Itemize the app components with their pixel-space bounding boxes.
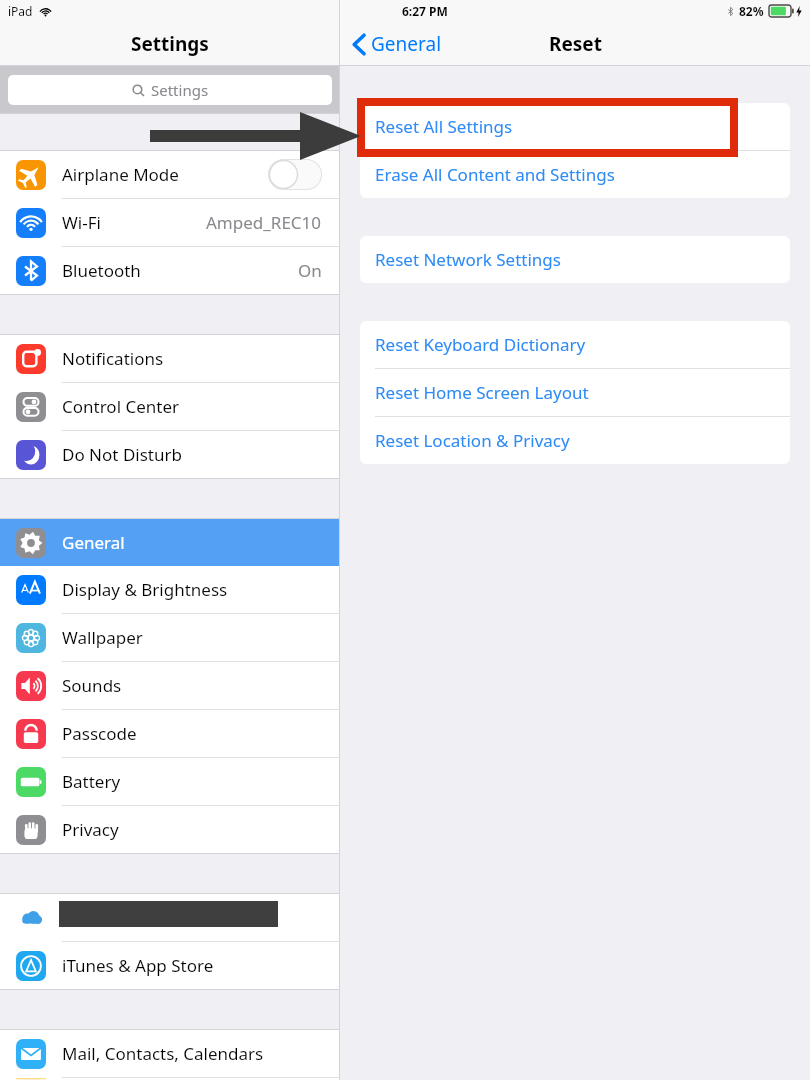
staticText: Amped_REC10 (206, 211, 322, 234)
staticText: iCloud (62, 899, 113, 922)
staticText: Bluetooth (62, 259, 141, 282)
staticText: Battery (62, 770, 121, 793)
staticText: Reset Location & Privacy (375, 429, 570, 452)
button[interactable]: General (0, 519, 340, 566)
button[interactable]: Notifications (0, 335, 340, 382)
staticText: Sounds (62, 674, 122, 697)
button[interactable]: iCloud (0, 894, 340, 941)
staticText: Wallpaper (62, 626, 143, 649)
staticText: Airplane Mode (62, 163, 179, 186)
staticText: Privacy (62, 818, 119, 841)
button[interactable]: Passcode (0, 710, 340, 757)
staticText: Mail, Contacts, Calendars (62, 1042, 264, 1065)
button[interactable]: Privacy (0, 806, 340, 853)
button[interactable]: Notes (0, 1078, 340, 1080)
button[interactable]: Display & Brightness (0, 566, 340, 613)
button[interactable]: Mail, Contacts, Calendars (0, 1030, 340, 1077)
staticText: Notifications (62, 347, 164, 370)
staticText: Control Center (62, 395, 180, 418)
staticText: Do Not Disturb (62, 443, 182, 466)
staticText: iPad (8, 3, 33, 19)
button[interactable]: iTunes & App Store (0, 942, 340, 989)
staticText: Reset All Settings (375, 115, 513, 138)
button[interactable]: Bluetooth (0, 247, 340, 294)
button[interactable]: Battery (0, 758, 340, 805)
staticText: Passcode (62, 722, 137, 745)
staticText: General (62, 531, 125, 554)
button[interactable]: Sounds (0, 662, 340, 709)
button[interactable]: Reset Keyboard Dictionary (360, 321, 790, 368)
staticText: Reset (549, 31, 602, 57)
button[interactable]: Control Center (0, 383, 340, 430)
button[interactable]: General (353, 31, 442, 57)
staticText: Settings (151, 80, 209, 100)
button[interactable]: Airplane Mode (0, 151, 340, 198)
button[interactable]: Wi-Fi (0, 199, 340, 246)
staticText: Reset Home Screen Layout (375, 381, 589, 404)
button[interactable]: Do Not Disturb (0, 431, 340, 478)
button[interactable]: Reset Home Screen Layout (360, 369, 790, 416)
button[interactable]: Reset Network Settings (360, 236, 790, 283)
button[interactable]: Settings (8, 75, 332, 105)
staticText: Display & Brightness (62, 578, 228, 601)
staticText: Wi-Fi (62, 211, 101, 234)
button[interactable]: Wallpaper (0, 614, 340, 661)
button[interactable]: Reset Location & Privacy (360, 417, 790, 464)
button[interactable]: Erase All Content and Settings (360, 151, 790, 198)
staticText: On (298, 259, 322, 282)
staticText: 82% (739, 3, 764, 19)
staticText: Settings (131, 31, 209, 57)
staticText: Erase All Content and Settings (375, 163, 615, 186)
staticText: Reset Network Settings (375, 248, 561, 271)
staticText: 6:27 PM (402, 3, 448, 19)
staticText: Reset Keyboard Dictionary (375, 333, 586, 356)
button[interactable]: Airplane Mode toggle (268, 159, 322, 190)
staticText: General (371, 31, 442, 57)
staticText: iTunes & App Store (62, 954, 214, 977)
button[interactable]: Reset All Settings (360, 103, 790, 150)
